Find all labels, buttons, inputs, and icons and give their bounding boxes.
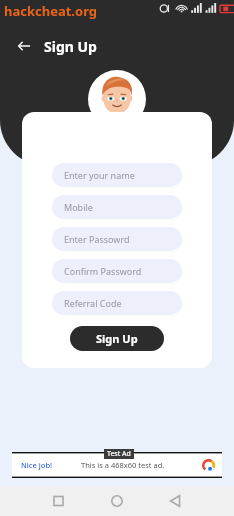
staticText: Enter your name [64,169,135,181]
staticText: Enter Passowrd [64,233,130,245]
button[interactable]: Sign Up [70,326,164,351]
staticText: Sign Up [96,331,138,346]
button[interactable]: Nice job! [12,452,222,478]
staticText: Sign Up [44,37,97,56]
staticText: Referral Code [64,297,122,309]
button[interactable]: Enter Passowrd [52,227,182,251]
staticText: Test Ad [107,449,131,459]
button[interactable]: Back [12,34,36,58]
button[interactable]: Enter your name [52,163,182,187]
button[interactable]: Mobile [52,195,182,219]
button[interactable]: Confirm Password [52,259,182,283]
button[interactable]: Referral Code [52,291,182,315]
staticText: Mobile [64,201,93,213]
staticText: Nice job! [21,460,53,470]
staticText: hackcheat.org [4,2,98,20]
staticText: This is a 468x60 test ad. [81,460,165,470]
staticText: Confirm Password [64,265,142,277]
